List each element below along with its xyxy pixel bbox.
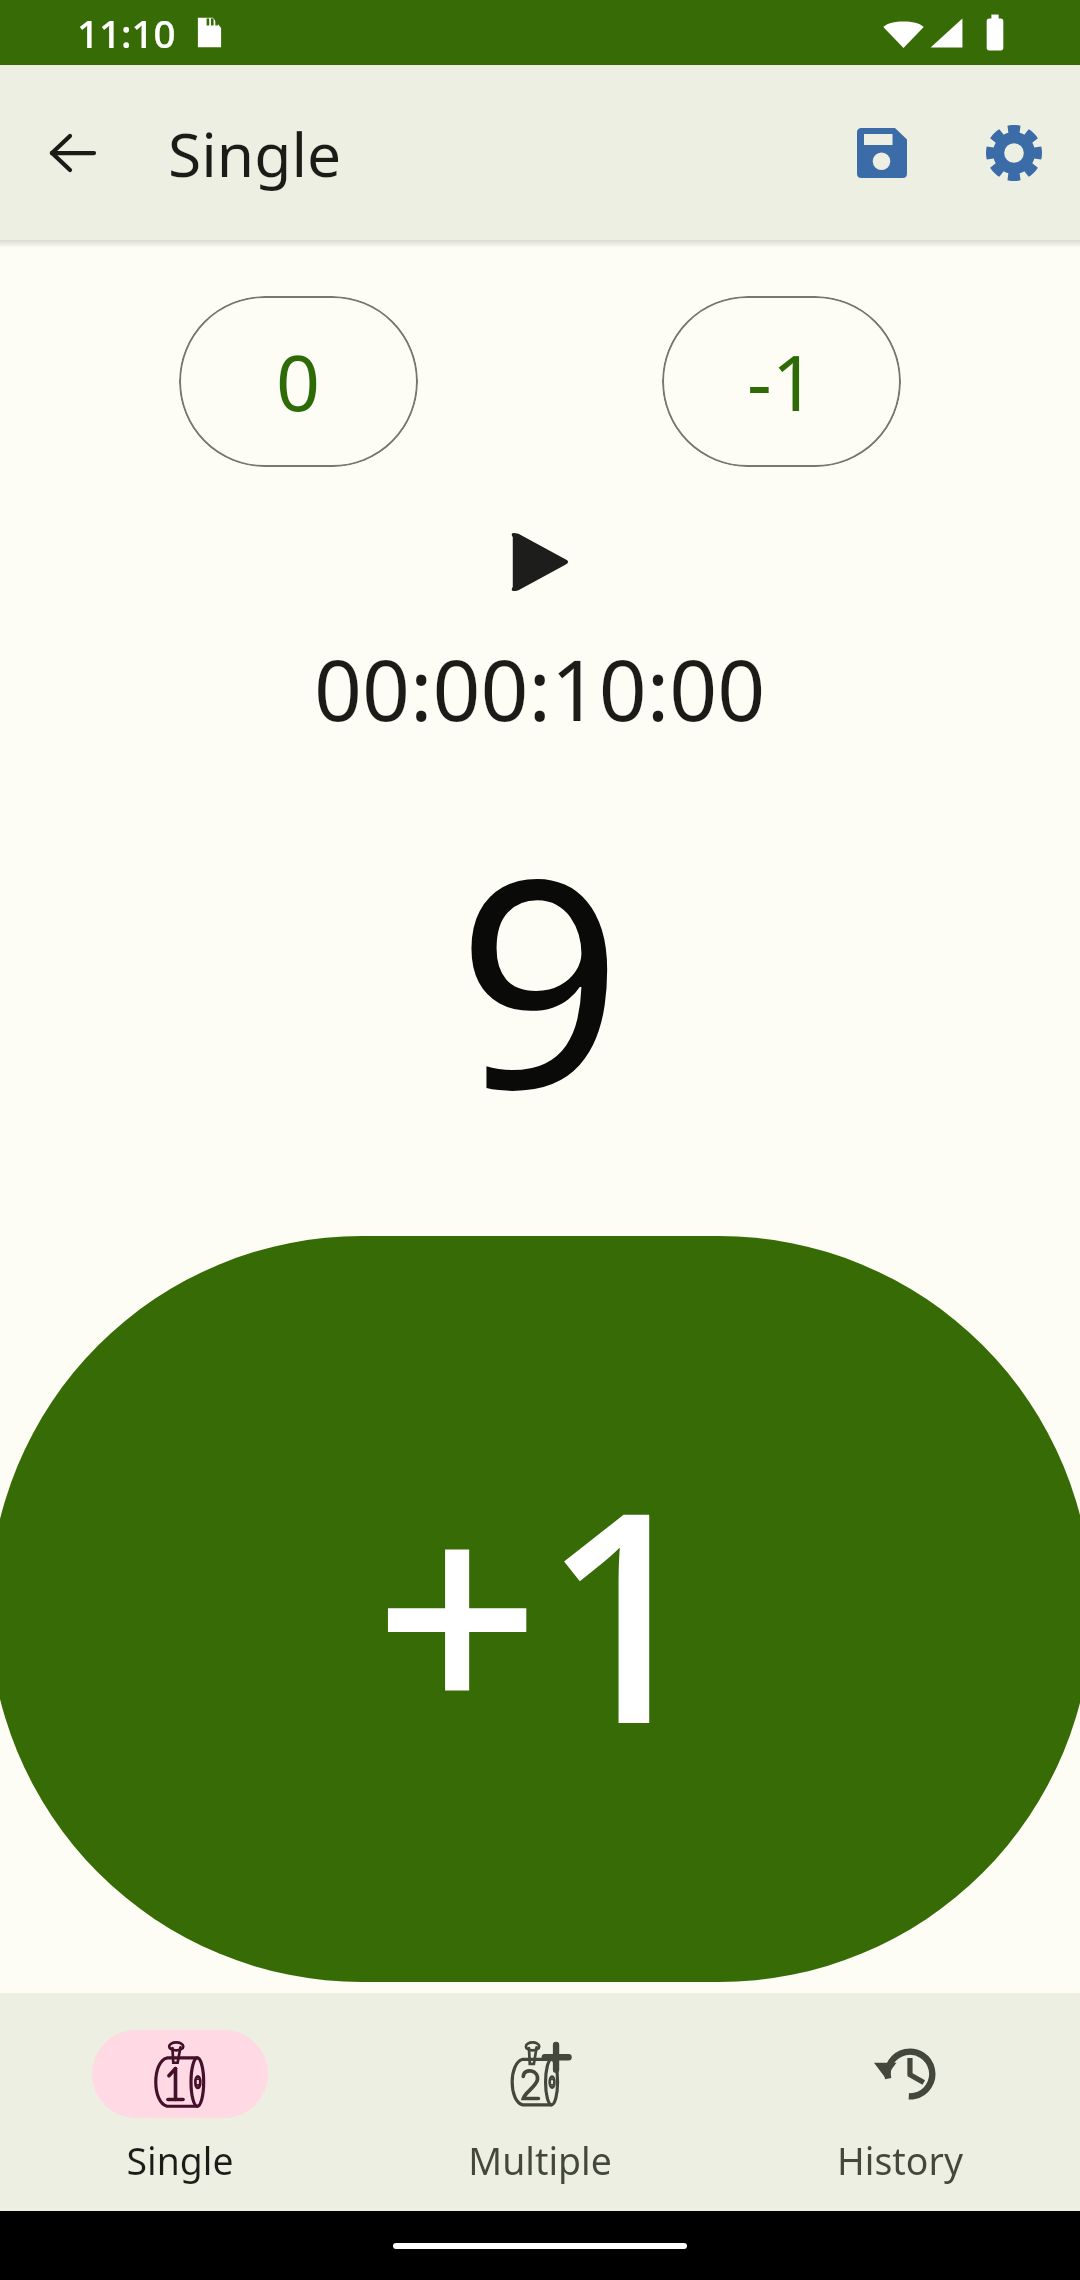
button[interactable]: -1 bbox=[662, 296, 901, 467]
staticText: 9 bbox=[457, 779, 623, 1172]
staticText: 00:00:10:00 bbox=[314, 631, 766, 745]
button[interactable]: +1 bbox=[0, 1236, 1080, 1982]
button[interactable]: 0 bbox=[179, 296, 418, 467]
button[interactable]: Multiple bbox=[360, 2019, 720, 2186]
button[interactable]: History bbox=[720, 2019, 1080, 2186]
staticText: Multiple bbox=[468, 2135, 612, 2186]
staticText: Single bbox=[126, 2135, 234, 2186]
button[interactable]: Save bbox=[816, 87, 948, 219]
staticText: 11:10 bbox=[77, 7, 176, 59]
staticText: +1 bbox=[374, 1411, 708, 1808]
button[interactable]: Settings bbox=[948, 87, 1080, 219]
staticText: -1 bbox=[747, 329, 816, 434]
staticText: 0 bbox=[276, 329, 321, 434]
button[interactable]: Single bbox=[0, 2019, 360, 2186]
button[interactable]: Back bbox=[7, 87, 139, 219]
staticText: History bbox=[837, 2135, 963, 2186]
button[interactable]: Start timer bbox=[509, 531, 572, 593]
staticText: Single bbox=[168, 112, 342, 194]
